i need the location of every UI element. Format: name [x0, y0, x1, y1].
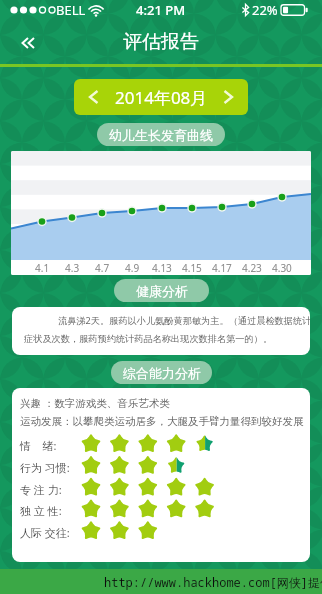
staticText: 2014年08月 [115, 86, 208, 109]
staticText: 评估报告 [123, 30, 199, 54]
staticText: 4:21 PM [136, 1, 186, 19]
staticText: 健康分析 [136, 283, 188, 299]
staticText: 运动发展：以攀爬类运动居多，大腿及手臂力量得到较好发展 [20, 415, 304, 428]
staticText: BELL [56, 1, 86, 19]
staticText: 情 绪: [20, 438, 57, 453]
button[interactable]: Back [12, 27, 44, 59]
button[interactable]: 幼儿生长发育曲线 [97, 123, 225, 146]
staticText: 综合能力分析 [123, 365, 201, 381]
staticText: 4.7 [95, 261, 110, 275]
staticText: 专 注 力: [20, 482, 62, 497]
staticText: 4.9 [125, 261, 140, 275]
staticText: 4.3 [65, 261, 80, 275]
staticText: 4.17 [212, 261, 232, 275]
staticText: 4.30 [272, 261, 292, 275]
staticText: 行为 习惯: [20, 460, 70, 475]
staticText: 幼儿生长发育曲线 [109, 127, 213, 143]
button[interactable]: 2014年08月 [74, 79, 248, 115]
staticText: 独 立 性: [20, 503, 62, 518]
staticText: 22% [252, 1, 278, 19]
button[interactable]: 综合能力分析 [111, 361, 212, 384]
staticText: 兴趣 ：数字游戏类、音乐艺术类 [20, 396, 170, 410]
staticText: 4.23 [242, 261, 262, 275]
staticText: 人际 交往: [20, 525, 70, 540]
staticText: 4.15 [182, 261, 202, 275]
button[interactable]: 健康分析 [114, 279, 209, 302]
staticText: 4.1 [35, 261, 50, 275]
staticText: http://www.hackhome.com[网侠]提供 [104, 574, 322, 590]
staticText: 症状及次数，服药预约统计药品名称出现次数排名第一的）。 [24, 333, 273, 345]
staticText: 4.13 [152, 261, 172, 275]
staticText: 流鼻涕2天。服药以小儿氨酚黄那敏为主。（通过晨检数据统计 [58, 314, 310, 327]
